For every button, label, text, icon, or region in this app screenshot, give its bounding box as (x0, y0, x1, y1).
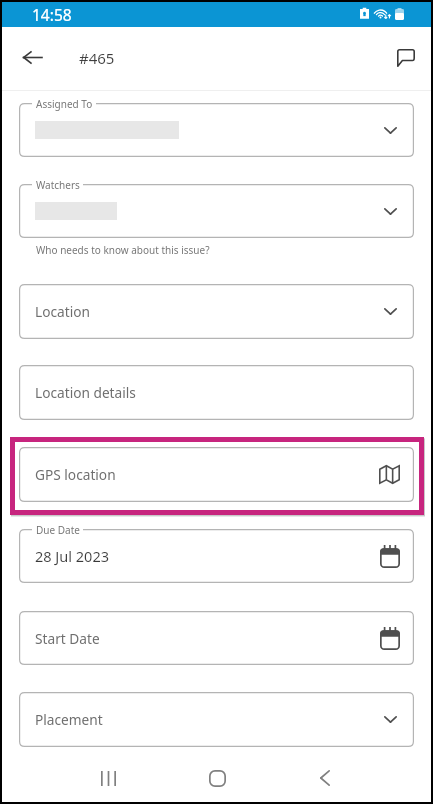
staticText: Watchers (36, 178, 80, 192)
staticText: Start Date (35, 629, 100, 648)
staticText: Location (35, 302, 90, 321)
button[interactable]: Back (301, 754, 349, 802)
staticText: Due Date (36, 523, 80, 537)
button[interactable]: Start Date (19, 611, 414, 665)
button[interactable]: Location details (19, 365, 414, 420)
staticText: 14:58 (32, 4, 72, 25)
button[interactable]: Watchers (19, 184, 414, 238)
staticText: Location details (35, 383, 136, 402)
staticText: #465 (79, 48, 115, 68)
button[interactable]: Comments (384, 36, 428, 80)
button[interactable]: GPS location (19, 447, 414, 502)
staticText: Placement (35, 710, 103, 729)
button[interactable]: Placement (19, 692, 414, 747)
button[interactable]: Recents (84, 754, 132, 802)
button[interactable]: Home (193, 754, 241, 802)
button[interactable]: Back (10, 35, 54, 79)
staticText: Who needs to know about this issue? (36, 243, 210, 257)
staticText: GPS location (35, 465, 116, 484)
button[interactable]: 28 Jul 2023 (19, 529, 414, 583)
button[interactable]: Location (19, 284, 414, 339)
button[interactable]: Assigned To (19, 103, 414, 157)
staticText: Assigned To (36, 97, 93, 111)
staticText: 28 Jul 2023 (35, 546, 109, 566)
